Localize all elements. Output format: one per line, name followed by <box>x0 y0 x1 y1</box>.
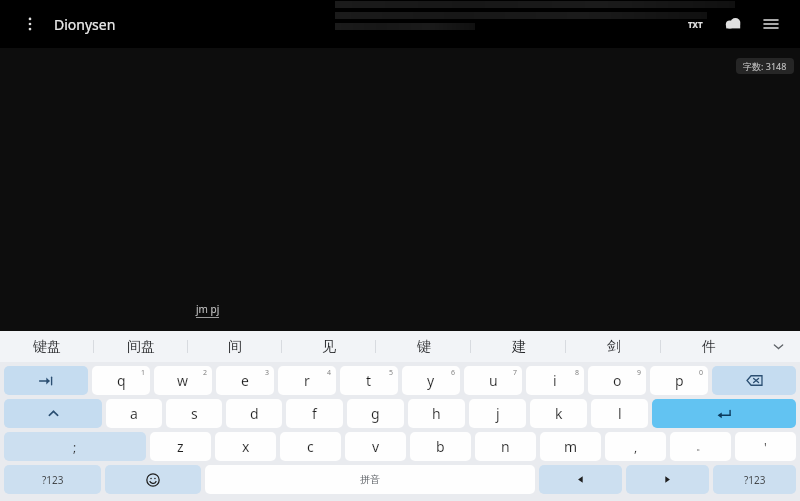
staticText: o <box>613 371 622 390</box>
staticText: d <box>250 404 259 423</box>
button[interactable]: k <box>530 399 587 428</box>
staticText: ; <box>73 439 77 455</box>
button[interactable]: s <box>166 399 222 428</box>
button[interactable]: b <box>410 432 471 461</box>
button[interactable]: Dionysen <box>54 15 116 34</box>
staticText: y <box>427 371 435 390</box>
button[interactable]: Menu <box>754 7 788 41</box>
staticText: jm pj <box>196 302 220 316</box>
staticText: u <box>489 371 498 390</box>
staticText: b <box>436 437 445 456</box>
staticText: v <box>372 437 380 456</box>
button[interactable]: n <box>475 432 536 461</box>
staticText: q <box>117 371 126 390</box>
button[interactable]: ' <box>735 432 796 461</box>
staticText: 6 <box>451 368 456 378</box>
staticText: 件 <box>702 338 716 356</box>
staticText: ?123 <box>744 473 766 487</box>
staticText: 拼音 <box>360 473 380 486</box>
button[interactable]: h <box>408 399 465 428</box>
staticText: g <box>371 404 380 423</box>
button[interactable]: Expand candidates <box>756 331 800 362</box>
button[interactable]: , <box>605 432 666 461</box>
button[interactable]: 间盘 <box>94 331 188 362</box>
staticText: 2 <box>203 368 208 378</box>
button[interactable]: Cloud sync <box>716 7 750 41</box>
staticText: , <box>634 439 638 455</box>
button[interactable]: x <box>215 432 276 461</box>
staticText: 9 <box>637 368 642 378</box>
button[interactable]: a <box>106 399 162 428</box>
button[interactable]: 字数: 3148 <box>736 58 794 74</box>
button[interactable]: 建 <box>471 331 566 362</box>
button[interactable]: Backspace <box>712 366 796 395</box>
button[interactable]: ?123 <box>713 465 796 494</box>
button[interactable]: f <box>286 399 343 428</box>
staticText: i <box>553 371 557 390</box>
button[interactable]: 间 <box>188 331 282 362</box>
button[interactable]: p <box>650 366 708 395</box>
staticText: 0 <box>699 368 704 378</box>
staticText: 5 <box>389 368 394 378</box>
button[interactable]: y <box>402 366 460 395</box>
button[interactable]: j <box>469 399 526 428</box>
staticText: 4 <box>327 368 332 378</box>
staticText: h <box>432 404 441 423</box>
button[interactable]: 拼音 <box>205 465 535 494</box>
button[interactable]: i <box>526 366 584 395</box>
staticText: ' <box>764 439 767 455</box>
button[interactable]: g <box>347 399 404 428</box>
staticText: 建 <box>512 338 526 356</box>
staticText: 3 <box>265 368 270 378</box>
button[interactable]: 。 <box>670 432 731 461</box>
staticText: TXT <box>688 19 703 30</box>
button[interactable]: 键盘 <box>0 331 94 362</box>
staticText: p <box>675 371 684 390</box>
button[interactable]: 剑 <box>566 331 661 362</box>
button[interactable]: w <box>154 366 212 395</box>
button[interactable]: d <box>226 399 282 428</box>
staticText: j <box>496 404 500 423</box>
button[interactable]: Move cursor right <box>626 465 709 494</box>
staticText: 间 <box>228 338 242 356</box>
button[interactable]: Emoji <box>105 465 201 494</box>
staticText: s <box>191 404 198 423</box>
staticText: 字数: 3148 <box>743 60 787 72</box>
button[interactable]: More options <box>12 6 48 42</box>
button[interactable]: Tab <box>4 366 88 395</box>
button[interactable]: ?123 <box>4 465 101 494</box>
button[interactable]: m <box>540 432 601 461</box>
button[interactable]: v <box>345 432 406 461</box>
button[interactable]: r <box>278 366 336 395</box>
button[interactable]: z <box>150 432 211 461</box>
button[interactable]: TXT format <box>678 7 712 41</box>
staticText: 间盘 <box>127 338 155 356</box>
button[interactable]: o <box>588 366 646 395</box>
staticText: w <box>177 371 189 390</box>
staticText: m <box>564 437 578 456</box>
button[interactable]: 键 <box>376 331 471 362</box>
staticText: a <box>130 404 138 423</box>
staticText: e <box>241 371 249 390</box>
button[interactable]: c <box>280 432 341 461</box>
button[interactable]: Shift <box>4 399 102 428</box>
button[interactable]: e <box>216 366 274 395</box>
staticText: ?123 <box>42 473 64 487</box>
button[interactable]: Move cursor left <box>539 465 622 494</box>
staticText: k <box>555 404 563 423</box>
button[interactable]: Enter <box>652 399 796 428</box>
staticText: z <box>177 437 184 456</box>
staticText: n <box>501 437 510 456</box>
button[interactable]: u <box>464 366 522 395</box>
staticText: 7 <box>513 368 518 378</box>
button[interactable]: t <box>340 366 398 395</box>
button[interactable]: q <box>92 366 150 395</box>
staticText: 键盘 <box>33 338 61 356</box>
staticText: 剑 <box>607 338 621 356</box>
button[interactable]: 见 <box>282 331 376 362</box>
staticText: 8 <box>575 368 580 378</box>
button[interactable]: ; <box>4 432 146 461</box>
staticText: 见 <box>322 338 336 356</box>
button[interactable]: l <box>591 399 648 428</box>
button[interactable]: 件 <box>661 331 756 362</box>
